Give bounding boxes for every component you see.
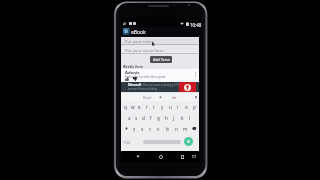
staticText: k — [181, 115, 184, 121]
button[interactable]: z — [130, 123, 138, 134]
staticText: q — [124, 104, 127, 110]
staticText: Weekly Verse — [123, 65, 143, 69]
staticText: r — [146, 104, 148, 110]
button[interactable]: n — [172, 123, 181, 134]
button[interactable]: Adonis — [121, 69, 199, 83]
button[interactable]: q — [122, 101, 129, 112]
staticText: a — [128, 115, 131, 121]
button[interactable]: e — [136, 101, 143, 112]
button[interactable]: y — [158, 101, 166, 112]
button[interactable]: t — [150, 101, 158, 112]
button[interactable]: i — [174, 101, 182, 112]
staticText: y — [161, 104, 164, 110]
staticText: m — [183, 126, 188, 132]
button[interactable]: More options — [193, 69, 198, 79]
staticText: w — [131, 104, 135, 110]
button[interactable]: Put your verse here — [121, 46, 199, 53]
staticText: Microsoft — [128, 83, 142, 87]
button[interactable]: u — [166, 101, 174, 112]
button[interactable]: a — [126, 112, 133, 123]
staticText: s — [135, 115, 138, 121]
button[interactable]: Back — [133, 152, 143, 161]
staticText: Your account is being p 251.125 — [143, 83, 185, 87]
staticText: t — [153, 104, 155, 110]
button[interactable]: h — [162, 112, 170, 123]
staticText: c — [149, 126, 152, 132]
staticText: Put your verse here — [125, 48, 164, 54]
staticText: o — [185, 104, 188, 110]
staticText: n — [175, 126, 178, 132]
button[interactable]: c — [146, 123, 154, 134]
staticText: h — [165, 115, 168, 121]
button[interactable]: w — [129, 101, 136, 112]
staticText: x — [141, 126, 144, 132]
staticText: z — [133, 126, 136, 132]
button[interactable]: Recent apps — [177, 152, 187, 161]
staticText: i — [177, 104, 179, 110]
staticText: eBook — [131, 29, 146, 36]
button[interactable]: m — [181, 123, 190, 134]
button[interactable]: x — [138, 123, 146, 134]
staticText: b — [166, 126, 169, 132]
button[interactable]: d — [140, 112, 147, 123]
staticText: Praise the Lord for He is good — [125, 75, 166, 79]
other: Dislike — [133, 77, 137, 81]
button[interactable]: j — [170, 112, 178, 123]
button[interactable]: Put your name — [121, 38, 199, 45]
button[interactable]: Home — [156, 152, 166, 161]
staticText: 10:48 — [190, 22, 202, 28]
button[interactable]: f — [147, 112, 154, 123]
staticText: Put your name — [125, 39, 155, 45]
button[interactable]: Backspace — [190, 123, 198, 134]
button[interactable]: Shift — [122, 123, 130, 134]
button[interactable]: o — [182, 101, 190, 112]
button[interactable]: v — [154, 123, 163, 134]
staticText: e — [138, 104, 141, 110]
staticText: secured from a failing... — [128, 87, 159, 91]
button[interactable]: k — [178, 112, 186, 123]
button[interactable]: p — [190, 101, 198, 112]
staticText: list — [172, 95, 177, 100]
staticText: Adonis — [125, 70, 140, 76]
button[interactable]: Switch keyboard — [189, 152, 198, 161]
staticText: j — [173, 115, 175, 121]
button[interactable]: Space — [143, 140, 181, 144]
staticText: ?123 — [123, 140, 131, 145]
staticText: f — [150, 115, 152, 121]
button[interactable]: l — [186, 112, 194, 123]
staticText: l — [189, 115, 191, 121]
button[interactable]: Add Verse — [150, 56, 172, 63]
button[interactable]: Enter — [184, 137, 193, 146]
button[interactable]: s — [133, 112, 140, 123]
button[interactable]: ?123 — [122, 138, 132, 146]
button[interactable]: Microsoft — [121, 82, 199, 92]
staticText: p — [193, 104, 196, 110]
staticText: v — [157, 126, 160, 132]
button[interactable]: b — [163, 123, 172, 134]
staticText: u — [169, 104, 172, 110]
staticText: Read — [143, 95, 152, 100]
button[interactable]: r — [143, 101, 150, 112]
staticText: d — [142, 115, 145, 121]
other: Like — [125, 77, 129, 81]
button[interactable]: g — [154, 112, 162, 123]
staticText: g — [157, 115, 160, 121]
staticText: Add Verse — [153, 57, 170, 62]
